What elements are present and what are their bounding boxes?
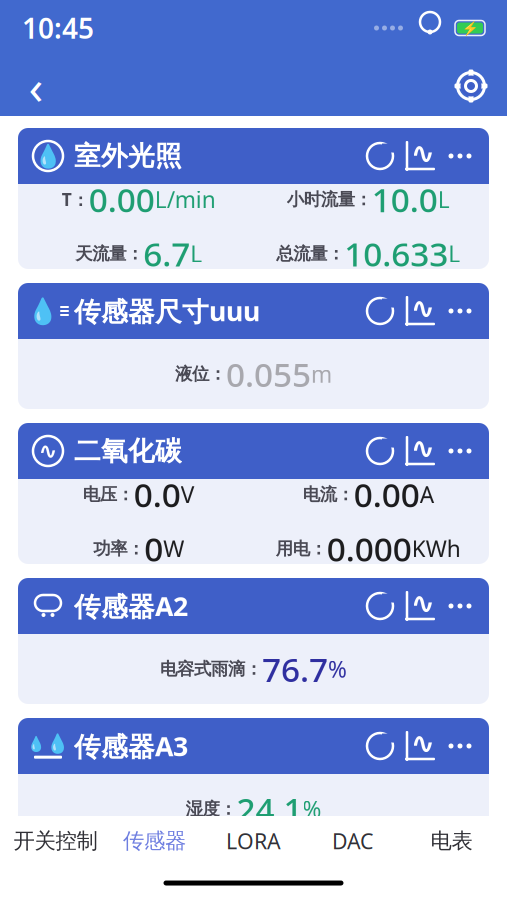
staticText: 用电： — [276, 538, 327, 559]
button[interactable]: 💧 — [18, 283, 489, 409]
staticText: L — [190, 239, 202, 269]
button[interactable]: 💧 — [18, 718, 489, 844]
staticText: 💧 — [27, 296, 59, 325]
staticText: m — [311, 359, 332, 389]
button[interactable]: Chart — [405, 141, 435, 171]
staticText: ∿ — [410, 586, 435, 620]
button[interactable]: Back — [14, 64, 58, 108]
staticText: 10.633 — [344, 231, 448, 276]
staticText: % — [302, 794, 321, 824]
staticText: 💧 — [34, 143, 62, 169]
staticText: 电流： — [303, 484, 354, 505]
staticText: ∿ — [38, 438, 57, 464]
staticText: 24.1 — [236, 787, 302, 831]
button[interactable]: 💧 — [18, 128, 489, 269]
button[interactable]: Refresh — [365, 141, 395, 171]
staticText: 0 — [144, 526, 163, 571]
staticText: 💧 — [27, 736, 45, 752]
button[interactable]: Chart — [405, 591, 435, 621]
staticText: ⚡ — [461, 20, 478, 36]
staticText: T： — [62, 188, 89, 211]
button[interactable]: Refresh — [365, 591, 395, 621]
staticText: ∿ — [410, 726, 435, 760]
staticText: 6.7 — [143, 231, 190, 276]
button[interactable]: Chart — [405, 731, 435, 761]
button[interactable]: More options — [445, 591, 475, 621]
button[interactable]: More options — [445, 141, 475, 171]
staticText: 76.7 — [262, 647, 328, 691]
staticText: 室外光照 — [74, 140, 182, 172]
staticText: A — [420, 479, 434, 509]
staticText: DAC — [332, 827, 373, 855]
button[interactable]: DAC — [303, 816, 402, 866]
staticText: W — [163, 534, 184, 564]
staticText: ∿ — [410, 431, 435, 465]
button[interactable]: More options — [445, 436, 475, 466]
staticText: 10:45 — [22, 9, 94, 47]
staticText: KWh — [412, 534, 461, 564]
button[interactable]: Chart — [405, 296, 435, 326]
staticText: 0.00 — [89, 177, 155, 221]
staticText: 传感器A2 — [74, 588, 188, 624]
button[interactable]: More options — [445, 296, 475, 326]
staticText: 0.055 — [226, 352, 311, 396]
staticText: 小时流量： — [287, 189, 372, 210]
staticText: 开关控制 — [13, 828, 97, 854]
staticText: 10.0 — [372, 177, 438, 221]
button[interactable]: Refresh — [365, 296, 395, 326]
staticText: ∿ — [410, 136, 435, 170]
button[interactable]: Refresh — [365, 436, 395, 466]
staticText: L — [448, 239, 460, 269]
staticText: 天流量： — [75, 243, 143, 264]
staticText: 0.00 — [354, 472, 420, 516]
button[interactable]: LORA — [204, 816, 303, 866]
button[interactable]: Chart — [405, 436, 435, 466]
staticText: 电表 — [430, 828, 472, 854]
staticText: 电容式雨滴： — [160, 658, 262, 680]
button[interactable]: 传感器 — [105, 816, 204, 866]
button[interactable]: Refresh — [365, 731, 395, 761]
staticText: L — [438, 184, 450, 214]
staticText: 液位： — [175, 363, 226, 385]
staticText: ∿ — [410, 291, 435, 325]
button[interactable]: 开关控制 — [6, 816, 105, 866]
staticText: 💧 — [46, 733, 69, 755]
staticText: 传感器A3 — [74, 728, 188, 764]
staticText: 电压： — [83, 484, 134, 505]
staticText: 湿度： — [185, 798, 236, 820]
staticText: LORA — [226, 827, 281, 855]
staticText: V — [181, 479, 195, 509]
staticText: ‹ — [28, 54, 43, 118]
staticText: 总流量： — [276, 243, 344, 264]
staticText: 传感器 — [123, 828, 186, 854]
staticText: L/min — [155, 184, 216, 214]
button[interactable]: 电表 — [402, 816, 501, 866]
staticText: 功率： — [93, 538, 144, 559]
button[interactable]: Settings — [449, 64, 493, 108]
button[interactable]: 传感器A2 — [18, 578, 489, 704]
staticText: 0.0 — [134, 472, 181, 516]
button[interactable]: ∿ — [18, 423, 489, 564]
button[interactable]: More options — [445, 731, 475, 761]
staticText: 0.000 — [327, 526, 412, 571]
staticText: 传感器尺寸uuu — [74, 293, 260, 329]
staticText: 二氧化碳 — [74, 435, 182, 467]
staticText: % — [328, 654, 347, 684]
